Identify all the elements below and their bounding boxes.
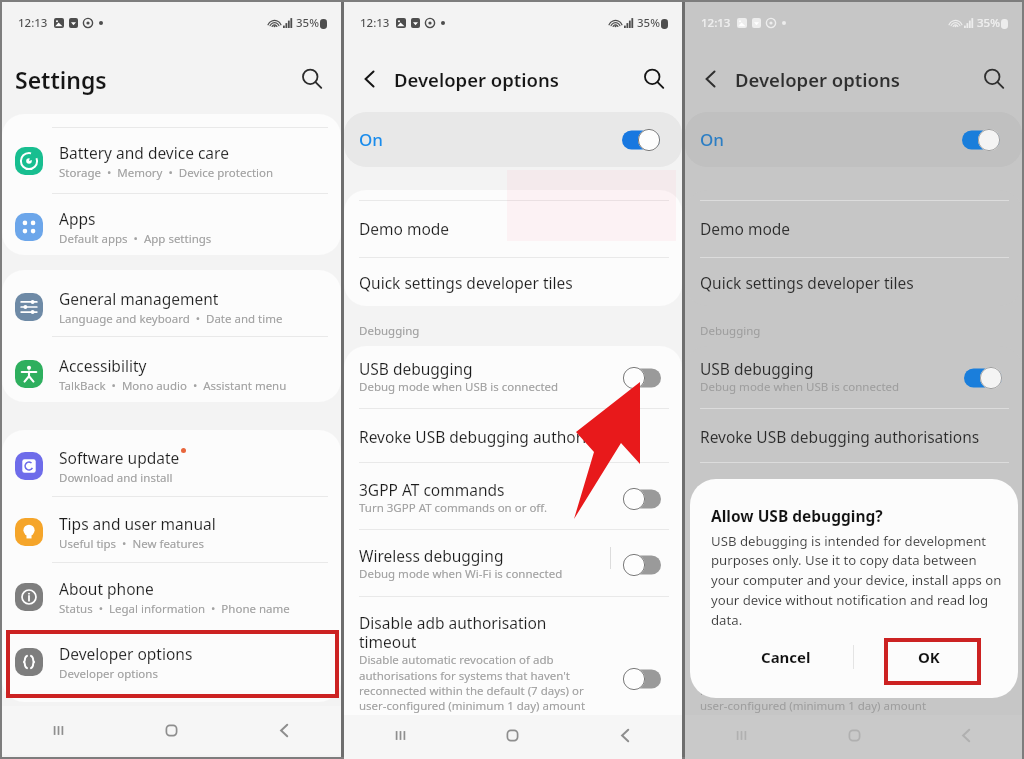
- button[interactable]: Recents: [344, 715, 456, 755]
- staticText: Debug mode when Wi-Fi is connected: [700, 566, 904, 582]
- staticText: Revoke USB debugging authorisations: [359, 426, 639, 447]
- button[interactable]: Cancel: [690, 633, 853, 681]
- staticText: 12:13: [701, 15, 731, 31]
- staticText: Cancel: [761, 647, 811, 667]
- staticText: Useful tips • New features: [59, 536, 205, 552]
- staticText: Download and install: [59, 470, 173, 486]
- staticText: 3GPP AT commands: [700, 479, 846, 500]
- staticText: Developer options: [59, 643, 193, 664]
- staticText: 3GPP AT commands: [359, 479, 505, 500]
- staticText: Disable adb authorisation timeout: [700, 612, 888, 652]
- staticText: 12:13: [18, 15, 48, 31]
- staticText: Disable automatic revocation of adb auth…: [700, 652, 927, 713]
- staticText: Debugging: [359, 323, 420, 339]
- staticText: General management: [59, 288, 219, 309]
- staticText: On: [700, 128, 724, 151]
- staticText: Settings: [15, 64, 107, 95]
- staticText: Developer options: [59, 666, 158, 682]
- button[interactable]: Search: [638, 63, 670, 95]
- staticText: Status • Legal information • Phone name: [59, 601, 290, 617]
- button[interactable]: Home: [456, 715, 569, 755]
- button[interactable]: Back: [695, 63, 727, 95]
- button[interactable]: [685, 201, 1022, 257]
- button[interactable]: About phone: [2, 574, 341, 620]
- button[interactable]: On: [685, 112, 1022, 167]
- button[interactable]: Accessibility: [2, 351, 341, 397]
- staticText: Wireless debugging: [359, 545, 504, 566]
- staticText: Disable adb authorisation timeout: [359, 612, 547, 652]
- staticText: USB debugging: [700, 358, 814, 379]
- button[interactable]: On: [344, 112, 682, 167]
- staticText: Turn 3GPP AT commands on or off.: [700, 500, 889, 516]
- button[interactable]: Battery and device care: [2, 138, 341, 184]
- button[interactable]: [685, 600, 1022, 703]
- staticText: Demo mode: [700, 218, 791, 239]
- button[interactable]: Back: [228, 706, 341, 755]
- staticText: Default apps • App settings: [59, 231, 212, 247]
- staticText: Quick settings developer tiles: [359, 272, 573, 293]
- button[interactable]: Apps: [2, 204, 341, 250]
- staticText: 35%: [296, 15, 319, 31]
- button[interactable]: [685, 466, 1022, 532]
- button[interactable]: Search: [295, 62, 329, 96]
- button[interactable]: [344, 533, 682, 599]
- button[interactable]: Software update: [2, 443, 341, 489]
- button[interactable]: [344, 600, 682, 703]
- staticText: OK: [918, 647, 940, 667]
- button[interactable]: Tips and user manual: [2, 509, 341, 555]
- staticText: Debug mode when Wi-Fi is connected: [359, 566, 563, 582]
- staticText: Software update: [59, 447, 180, 468]
- button[interactable]: Back: [569, 715, 682, 755]
- button[interactable]: [344, 258, 682, 306]
- staticText: Turn 3GPP AT commands on or off.: [359, 500, 548, 516]
- staticText: Wireless debugging: [700, 545, 845, 566]
- staticText: Quick settings developer tiles: [700, 272, 914, 293]
- staticText: Storage • Memory • Device protection: [59, 165, 274, 181]
- button[interactable]: Search: [978, 63, 1010, 95]
- button[interactable]: General management: [2, 284, 341, 330]
- staticText: About phone: [59, 578, 154, 599]
- staticText: Language and keyboard • Date and time: [59, 311, 283, 327]
- staticText: Developer options: [735, 67, 900, 92]
- staticText: Apps: [59, 208, 96, 229]
- staticText: TalkBack • Mono audio • Assistant menu: [59, 378, 287, 394]
- staticText: Revoke USB debugging authorisations: [700, 426, 980, 447]
- staticText: 35%: [977, 15, 1000, 31]
- button[interactable]: [685, 411, 1022, 465]
- button[interactable]: [685, 346, 1022, 410]
- staticText: Debugging: [700, 323, 761, 339]
- button[interactable]: [685, 258, 1022, 306]
- button[interactable]: [685, 533, 1022, 599]
- button[interactable]: Home: [115, 706, 228, 755]
- staticText: Debug mode when USB is connected: [700, 379, 900, 395]
- staticText: Allow USB debugging?: [711, 505, 883, 526]
- staticText: Disable automatic revocation of adb auth…: [359, 652, 586, 713]
- staticText: USB debugging is intended for developmen…: [711, 532, 1002, 629]
- button[interactable]: Back: [354, 63, 386, 95]
- staticText: Debug mode when USB is connected: [359, 379, 559, 395]
- staticText: USB debugging: [359, 358, 473, 379]
- staticText: Accessibility: [59, 355, 147, 376]
- button[interactable]: Developer options: [2, 639, 341, 685]
- staticText: Demo mode: [359, 218, 450, 239]
- staticText: Tips and user manual: [59, 513, 216, 534]
- button[interactable]: OK: [854, 633, 1018, 681]
- button[interactable]: Recents: [2, 706, 115, 755]
- button[interactable]: [344, 411, 682, 465]
- staticText: On: [359, 128, 383, 151]
- staticText: Battery and device care: [59, 142, 229, 163]
- staticText: 12:13: [360, 15, 390, 31]
- button[interactable]: [344, 201, 682, 257]
- button[interactable]: [344, 346, 682, 410]
- staticText: Developer options: [394, 67, 559, 92]
- button[interactable]: [344, 466, 682, 532]
- staticText: 35%: [637, 15, 660, 31]
